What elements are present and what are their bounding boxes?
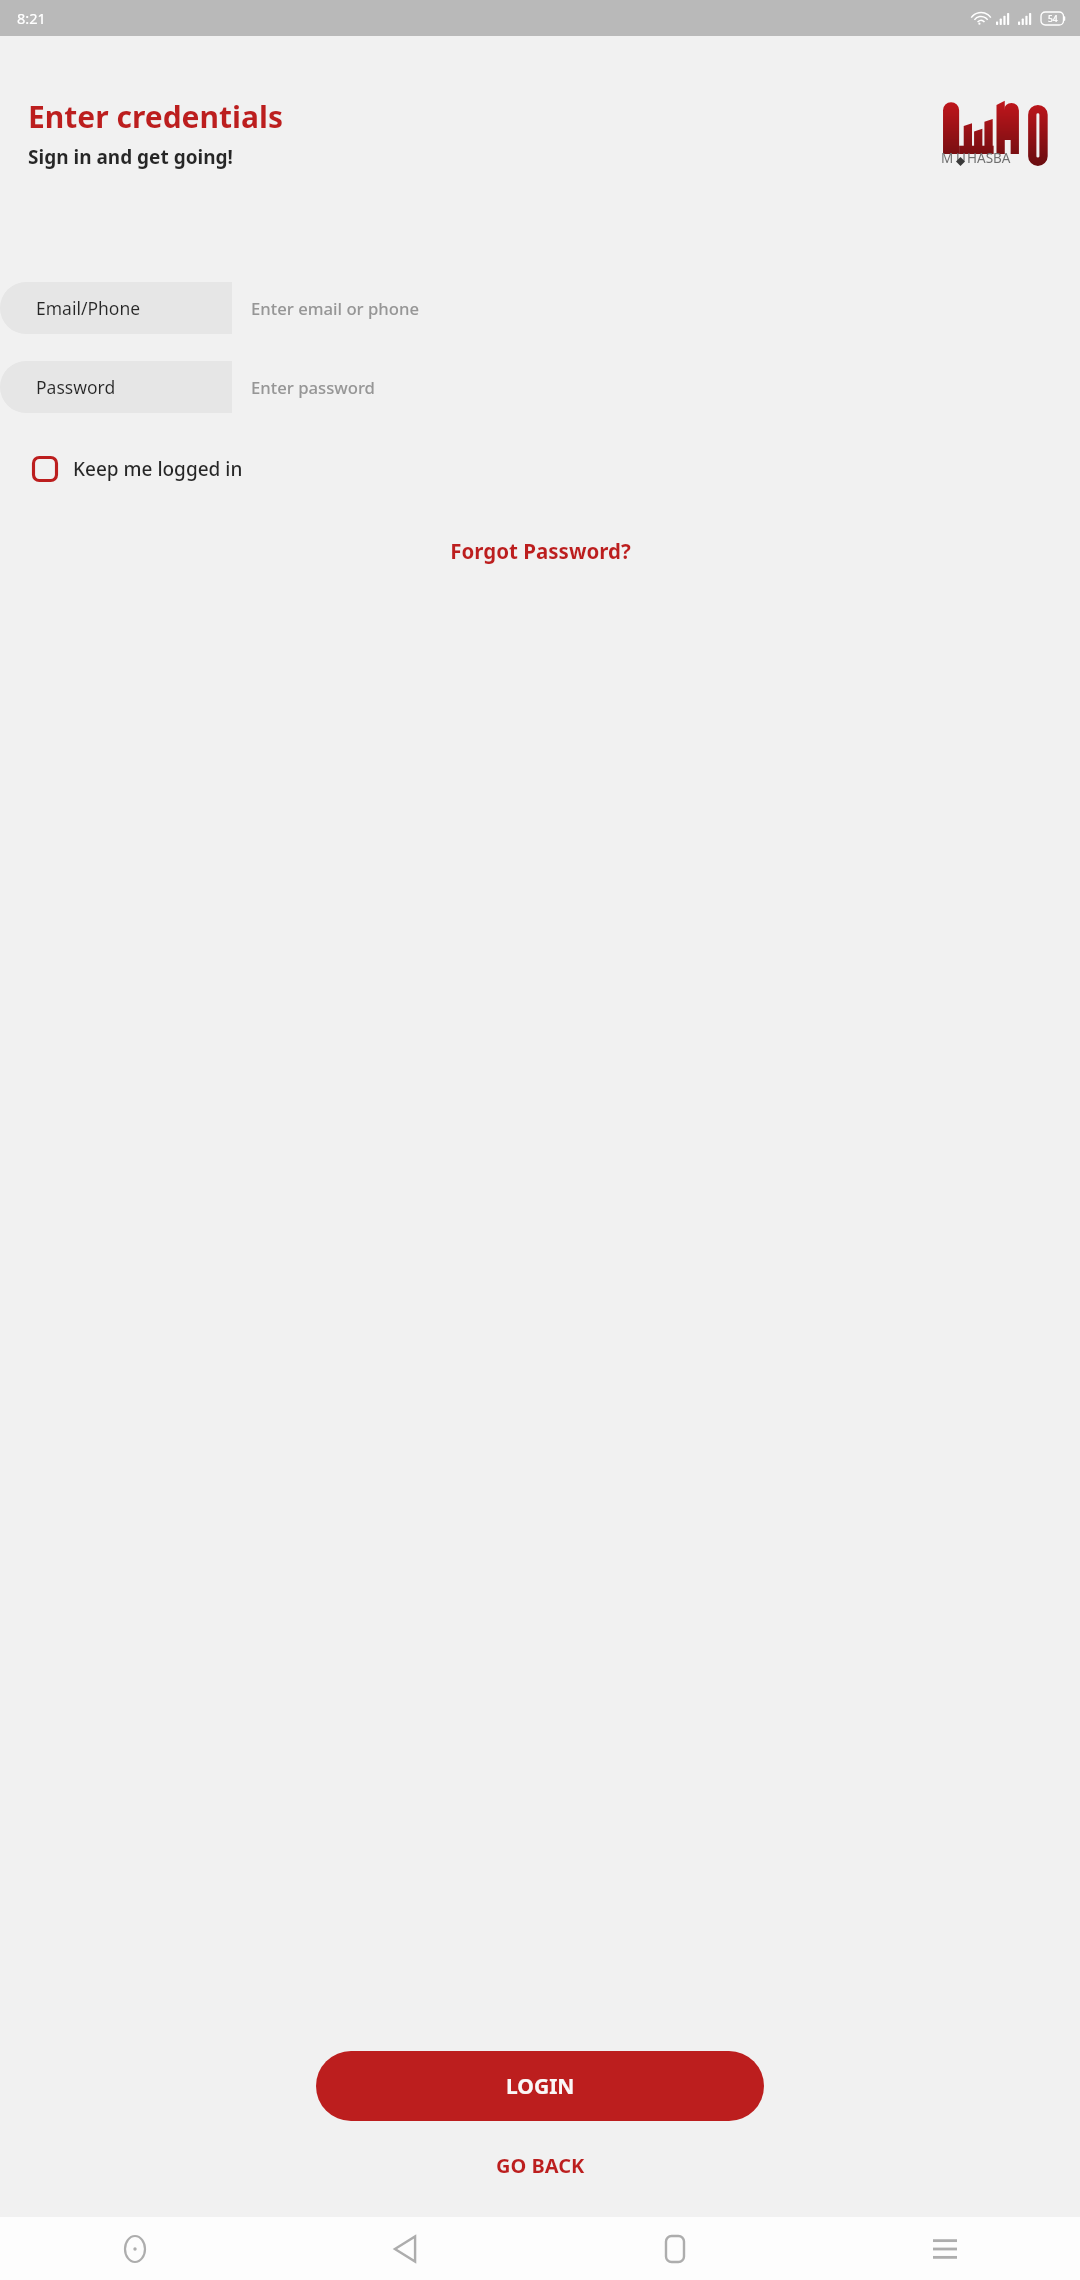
staticText: U <box>956 149 966 167</box>
button[interactable]: Back <box>270 2217 540 2280</box>
staticText: Enter email or phone <box>251 297 420 320</box>
staticText: LOGIN <box>506 2072 575 2101</box>
staticText: Enter credentials <box>28 96 283 137</box>
staticText: Keep me logged in <box>73 456 243 482</box>
button[interactable]: Home <box>540 2217 810 2280</box>
button[interactable]: Email/Phone <box>0 282 1080 334</box>
staticText: 8:21 <box>17 8 46 28</box>
staticText: M <box>941 149 954 167</box>
button[interactable]: GO BACK <box>480 2144 601 2187</box>
staticText: Sign in and get going! <box>28 144 233 170</box>
staticText: 54 <box>1048 13 1058 25</box>
staticText: GO BACK <box>496 2152 585 2179</box>
staticText: Email/Phone <box>36 296 141 320</box>
staticText: Enter password <box>251 376 375 399</box>
button[interactable]: LOGIN <box>316 2051 764 2121</box>
staticText: Forgot Password? <box>450 537 631 565</box>
staticText: HASBA <box>967 149 1011 167</box>
button[interactable]: Forgot Password? <box>438 531 643 571</box>
button[interactable]: Recent <box>0 2217 270 2280</box>
staticText: Password <box>36 375 116 399</box>
button[interactable]: Keep me logged in <box>28 450 247 488</box>
button[interactable]: Password <box>0 361 1080 413</box>
button[interactable]: Menu <box>810 2217 1080 2280</box>
